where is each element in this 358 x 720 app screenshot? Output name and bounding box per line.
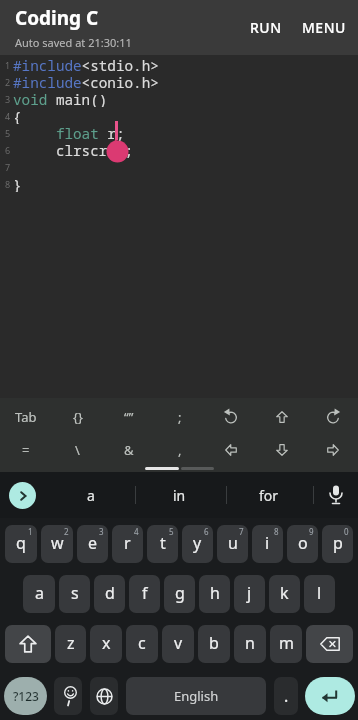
button[interactable]: n (234, 625, 266, 663)
staticText: j (247, 582, 252, 604)
button[interactable]: in (148, 472, 210, 518)
button[interactable]: \ (52, 437, 103, 463)
button[interactable] (205, 437, 256, 463)
staticText: ?123 (13, 688, 39, 704)
staticText: #include<conio.h> (13, 73, 159, 90)
staticText: MENU (302, 18, 346, 37)
button[interactable] (54, 677, 82, 715)
staticText: v (174, 632, 183, 654)
staticText: k (280, 582, 289, 604)
button[interactable]: ; (154, 404, 205, 430)
staticText: 3 (5, 93, 11, 105)
button[interactable]: y (182, 525, 213, 563)
button[interactable]: . (274, 677, 298, 715)
button[interactable]: MENU (296, 12, 352, 43)
button[interactable]: ?123 (4, 677, 47, 715)
staticText: = (22, 441, 30, 459)
button[interactable]: d (94, 575, 125, 613)
staticText: e (88, 532, 98, 554)
staticText: p (333, 532, 343, 554)
staticText: 5 (169, 526, 174, 537)
button[interactable]: e (77, 525, 108, 563)
staticText: q (16, 532, 26, 554)
staticText: a (87, 486, 95, 505)
button[interactable]: x (90, 625, 122, 663)
staticText: “” (124, 408, 134, 426)
button[interactable] (305, 677, 355, 715)
button[interactable]: h (199, 575, 230, 613)
button[interactable] (256, 437, 307, 463)
button[interactable]: b (198, 625, 230, 663)
button[interactable] (328, 485, 344, 505)
staticText: {} (73, 408, 83, 426)
staticText: { (13, 107, 22, 124)
staticText: 2 (5, 76, 11, 88)
staticText: 6 (5, 144, 11, 156)
staticText: Coding C (15, 5, 99, 31)
button[interactable]: o (287, 525, 318, 563)
staticText: void main() (13, 90, 108, 107)
staticText: 9 (309, 526, 314, 537)
button[interactable]: & (103, 437, 154, 463)
button[interactable] (256, 404, 307, 430)
button[interactable]: r (112, 525, 143, 563)
staticText: s (71, 582, 79, 604)
staticText: m (279, 632, 294, 654)
button[interactable] (9, 482, 36, 509)
button[interactable] (307, 437, 358, 463)
staticText: t (160, 532, 166, 554)
staticText: w (51, 532, 64, 554)
staticText: } (13, 175, 22, 192)
button[interactable]: c (126, 625, 158, 663)
staticText: 3 (99, 526, 104, 537)
staticText: 8 (274, 526, 279, 537)
staticText: float r; (13, 124, 125, 141)
staticText: x (102, 632, 111, 654)
button[interactable]: q (5, 525, 37, 563)
button[interactable] (306, 625, 353, 663)
button[interactable]: i (252, 525, 283, 563)
staticText: for (259, 486, 279, 505)
button[interactable]: “” (103, 404, 154, 430)
button[interactable]: w (41, 525, 73, 563)
button[interactable]: v (162, 625, 194, 663)
staticText: l (317, 582, 322, 604)
button[interactable]: English (126, 677, 266, 715)
button[interactable]: {} (52, 404, 103, 430)
button[interactable]: f (129, 575, 160, 613)
button[interactable] (5, 625, 51, 663)
button[interactable]: s (59, 575, 90, 613)
button[interactable]: g (164, 575, 195, 613)
staticText: r (124, 532, 131, 554)
button[interactable]: a (60, 472, 122, 518)
button[interactable]: RUN (244, 12, 288, 43)
button[interactable] (307, 404, 358, 430)
staticText: 7 (239, 526, 244, 537)
button[interactable] (90, 677, 118, 715)
staticText: c (138, 632, 146, 654)
staticText: 4 (5, 110, 11, 122)
button[interactable]: a (23, 575, 55, 613)
button[interactable]: Tab (0, 404, 52, 430)
staticText: z (67, 632, 75, 654)
button[interactable]: u (217, 525, 248, 563)
button[interactable]: l (304, 575, 335, 613)
button[interactable]: , (154, 437, 205, 463)
staticText: 1 (5, 59, 11, 71)
staticText: 5 (5, 127, 11, 139)
staticText: Tab (15, 408, 37, 426)
staticText: \ (75, 441, 80, 459)
button[interactable]: = (0, 437, 52, 463)
staticText: , (178, 441, 182, 459)
button[interactable] (205, 404, 256, 430)
button[interactable]: z (55, 625, 86, 663)
button[interactable]: for (238, 472, 300, 518)
staticText: RUN (250, 18, 282, 37)
button[interactable]: k (269, 575, 300, 613)
button[interactable]: t (147, 525, 178, 563)
staticText: & (124, 441, 134, 459)
button[interactable]: p (322, 525, 353, 563)
button[interactable]: j (234, 575, 265, 613)
button[interactable]: m (270, 625, 302, 663)
staticText: f (142, 582, 148, 604)
